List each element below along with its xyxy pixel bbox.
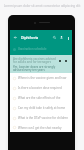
button[interactable]: Is there a booster dose required xyxy=(10,83,72,93)
staticText: Yes, booster doses are strongly xyxy=(13,65,56,69)
button[interactable]: What are the side effects of the vaccine xyxy=(10,93,72,103)
staticText: Diphtheria xyxy=(21,35,39,40)
staticText: Can my child take it safely at home xyxy=(18,106,66,110)
button[interactable]: More options xyxy=(65,35,71,41)
staticText: Where can I get the shot nearby xyxy=(18,126,62,130)
staticText: What is the DTaP vaccine for children xyxy=(18,116,68,120)
button[interactable]: Where is the vaccine given and how often xyxy=(10,73,72,83)
button[interactable]: Search xyxy=(51,34,58,41)
button[interactable]: Where can I get the shot nearby xyxy=(10,123,72,132)
button[interactable]: Back xyxy=(12,34,19,41)
staticText: Is there a booster dose required xyxy=(18,86,62,90)
staticText: Are diphtheria vaccines advised xyxy=(13,57,56,61)
staticText: What are the side effects of the vaccine xyxy=(18,96,70,100)
staticText: Vaccination schedule xyxy=(18,47,47,51)
button[interactable]: What is the DTaP vaccine for children xyxy=(10,113,72,123)
button[interactable]: Account xyxy=(58,34,65,41)
button[interactable]: Can my child take it safely at home xyxy=(10,103,72,113)
staticText: for adults and for teenagers xyxy=(13,60,52,64)
staticText: advised every ten years xyxy=(13,68,45,72)
staticText: Where is the vaccine given and how often xyxy=(18,76,70,80)
staticText: Lorem ipsum dolor sit amet consectetur a… xyxy=(0,4,84,8)
